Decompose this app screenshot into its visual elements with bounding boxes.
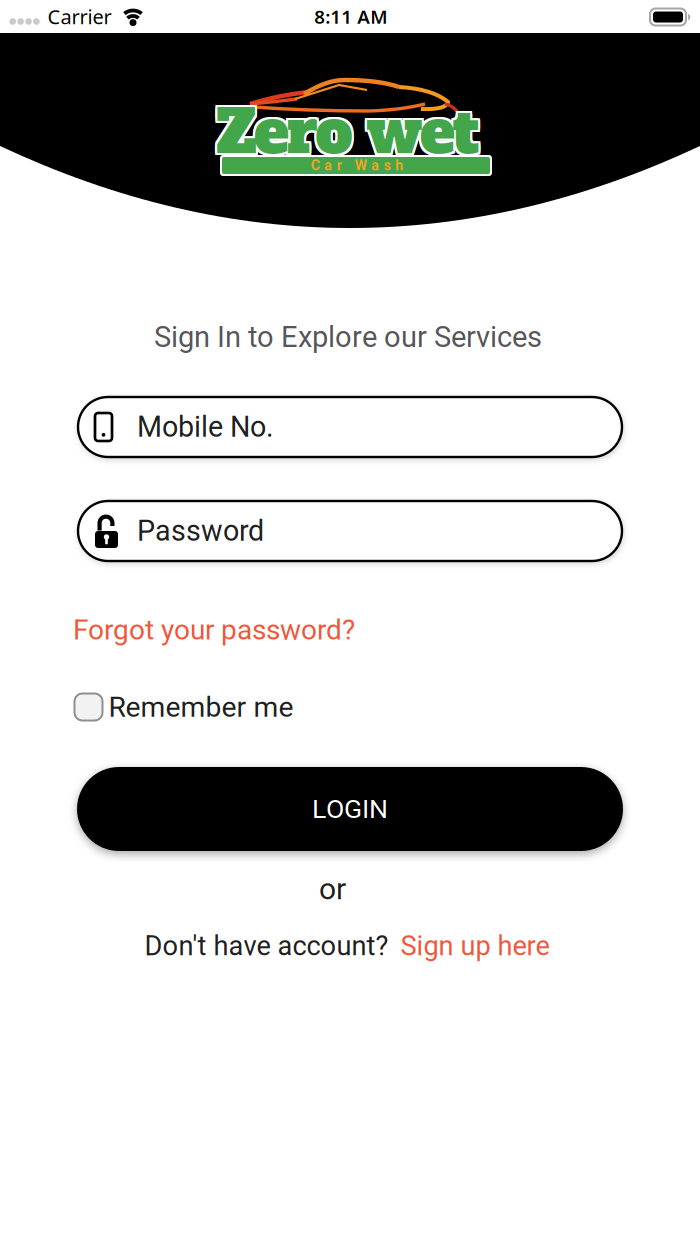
staticText: Zero wet — [216, 90, 479, 171]
button[interactable]: Remember me — [74, 690, 293, 723]
staticText: or — [319, 871, 346, 907]
staticText: Car Wash — [311, 157, 403, 174]
staticText: Zero wet — [214, 94, 477, 175]
button[interactable]: Mobile No. — [78, 397, 622, 457]
staticText: Sign In to Explore our Services — [154, 320, 542, 354]
staticText: Zero wet — [214, 92, 477, 173]
staticText: 8:11 AM — [314, 4, 387, 29]
staticText: Zero wet — [216, 94, 479, 175]
staticText: Carrier — [47, 3, 111, 30]
staticText: Sign up here — [400, 930, 549, 962]
staticText: Password — [137, 514, 264, 548]
staticText: LOGIN — [312, 793, 388, 825]
staticText: Zero wet — [218, 92, 481, 173]
staticText: Don't have account? — [144, 930, 388, 962]
button[interactable]: Password — [78, 501, 622, 561]
staticText: Zero wet — [218, 94, 481, 175]
button[interactable]: Forgot your password? — [73, 614, 355, 646]
button[interactable]: LOGIN — [77, 767, 623, 851]
staticText: Mobile No. — [137, 410, 274, 444]
staticText: Zero wet — [216, 92, 479, 173]
staticText: Zero wet — [214, 90, 477, 171]
staticText: Remember me — [108, 690, 293, 723]
staticText: Forgot your password? — [73, 614, 355, 646]
button[interactable]: Sign up here — [400, 930, 549, 962]
staticText: Zero wet — [218, 90, 481, 171]
